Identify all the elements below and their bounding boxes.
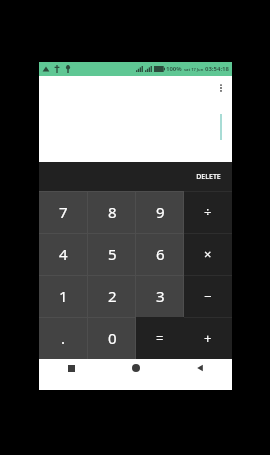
staticText: × [204,245,212,263]
staticText: 5 [108,244,117,264]
button[interactable]: 6 [136,233,184,275]
staticText: + [204,329,212,347]
button[interactable]: 9 [136,191,184,233]
button[interactable]: ÷ [184,191,232,233]
staticText: − [204,287,212,305]
staticText: 100% [166,65,182,73]
staticText: = [156,329,164,347]
button[interactable]: 2 [88,275,136,317]
staticText: 2 [108,286,117,306]
staticText: . [61,328,66,348]
button[interactable]: = [136,317,184,359]
button[interactable]: Recent apps [39,360,104,376]
staticText: DELETE [196,172,221,182]
button[interactable]: 4 [39,233,88,275]
button[interactable]: . [39,317,88,359]
button[interactable]: 5 [88,233,136,275]
button[interactable]: More options [214,81,228,95]
staticText: sat 17 Jun [184,67,204,72]
staticText: 1 [59,286,68,306]
button[interactable]: 7 [39,191,88,233]
staticText: 8 [108,202,117,222]
button[interactable]: 0 [88,317,136,359]
button[interactable]: Back [168,360,232,376]
button[interactable]: DELETE [184,162,232,191]
staticText: 3 [156,286,165,306]
staticText: 03:54:18 [205,65,229,73]
button[interactable]: − [184,275,232,317]
staticText: ÷ [204,203,212,221]
staticText: 4 [59,244,68,264]
button[interactable]: 3 [136,275,184,317]
button[interactable]: × [184,233,232,275]
button[interactable]: Home [104,360,168,376]
staticText: 9 [156,202,165,222]
staticText: 7 [59,202,68,222]
staticText: 0 [108,328,117,348]
button[interactable]: + [184,317,232,359]
button[interactable]: 1 [39,275,88,317]
staticText: 6 [156,244,165,264]
button[interactable]: 8 [88,191,136,233]
